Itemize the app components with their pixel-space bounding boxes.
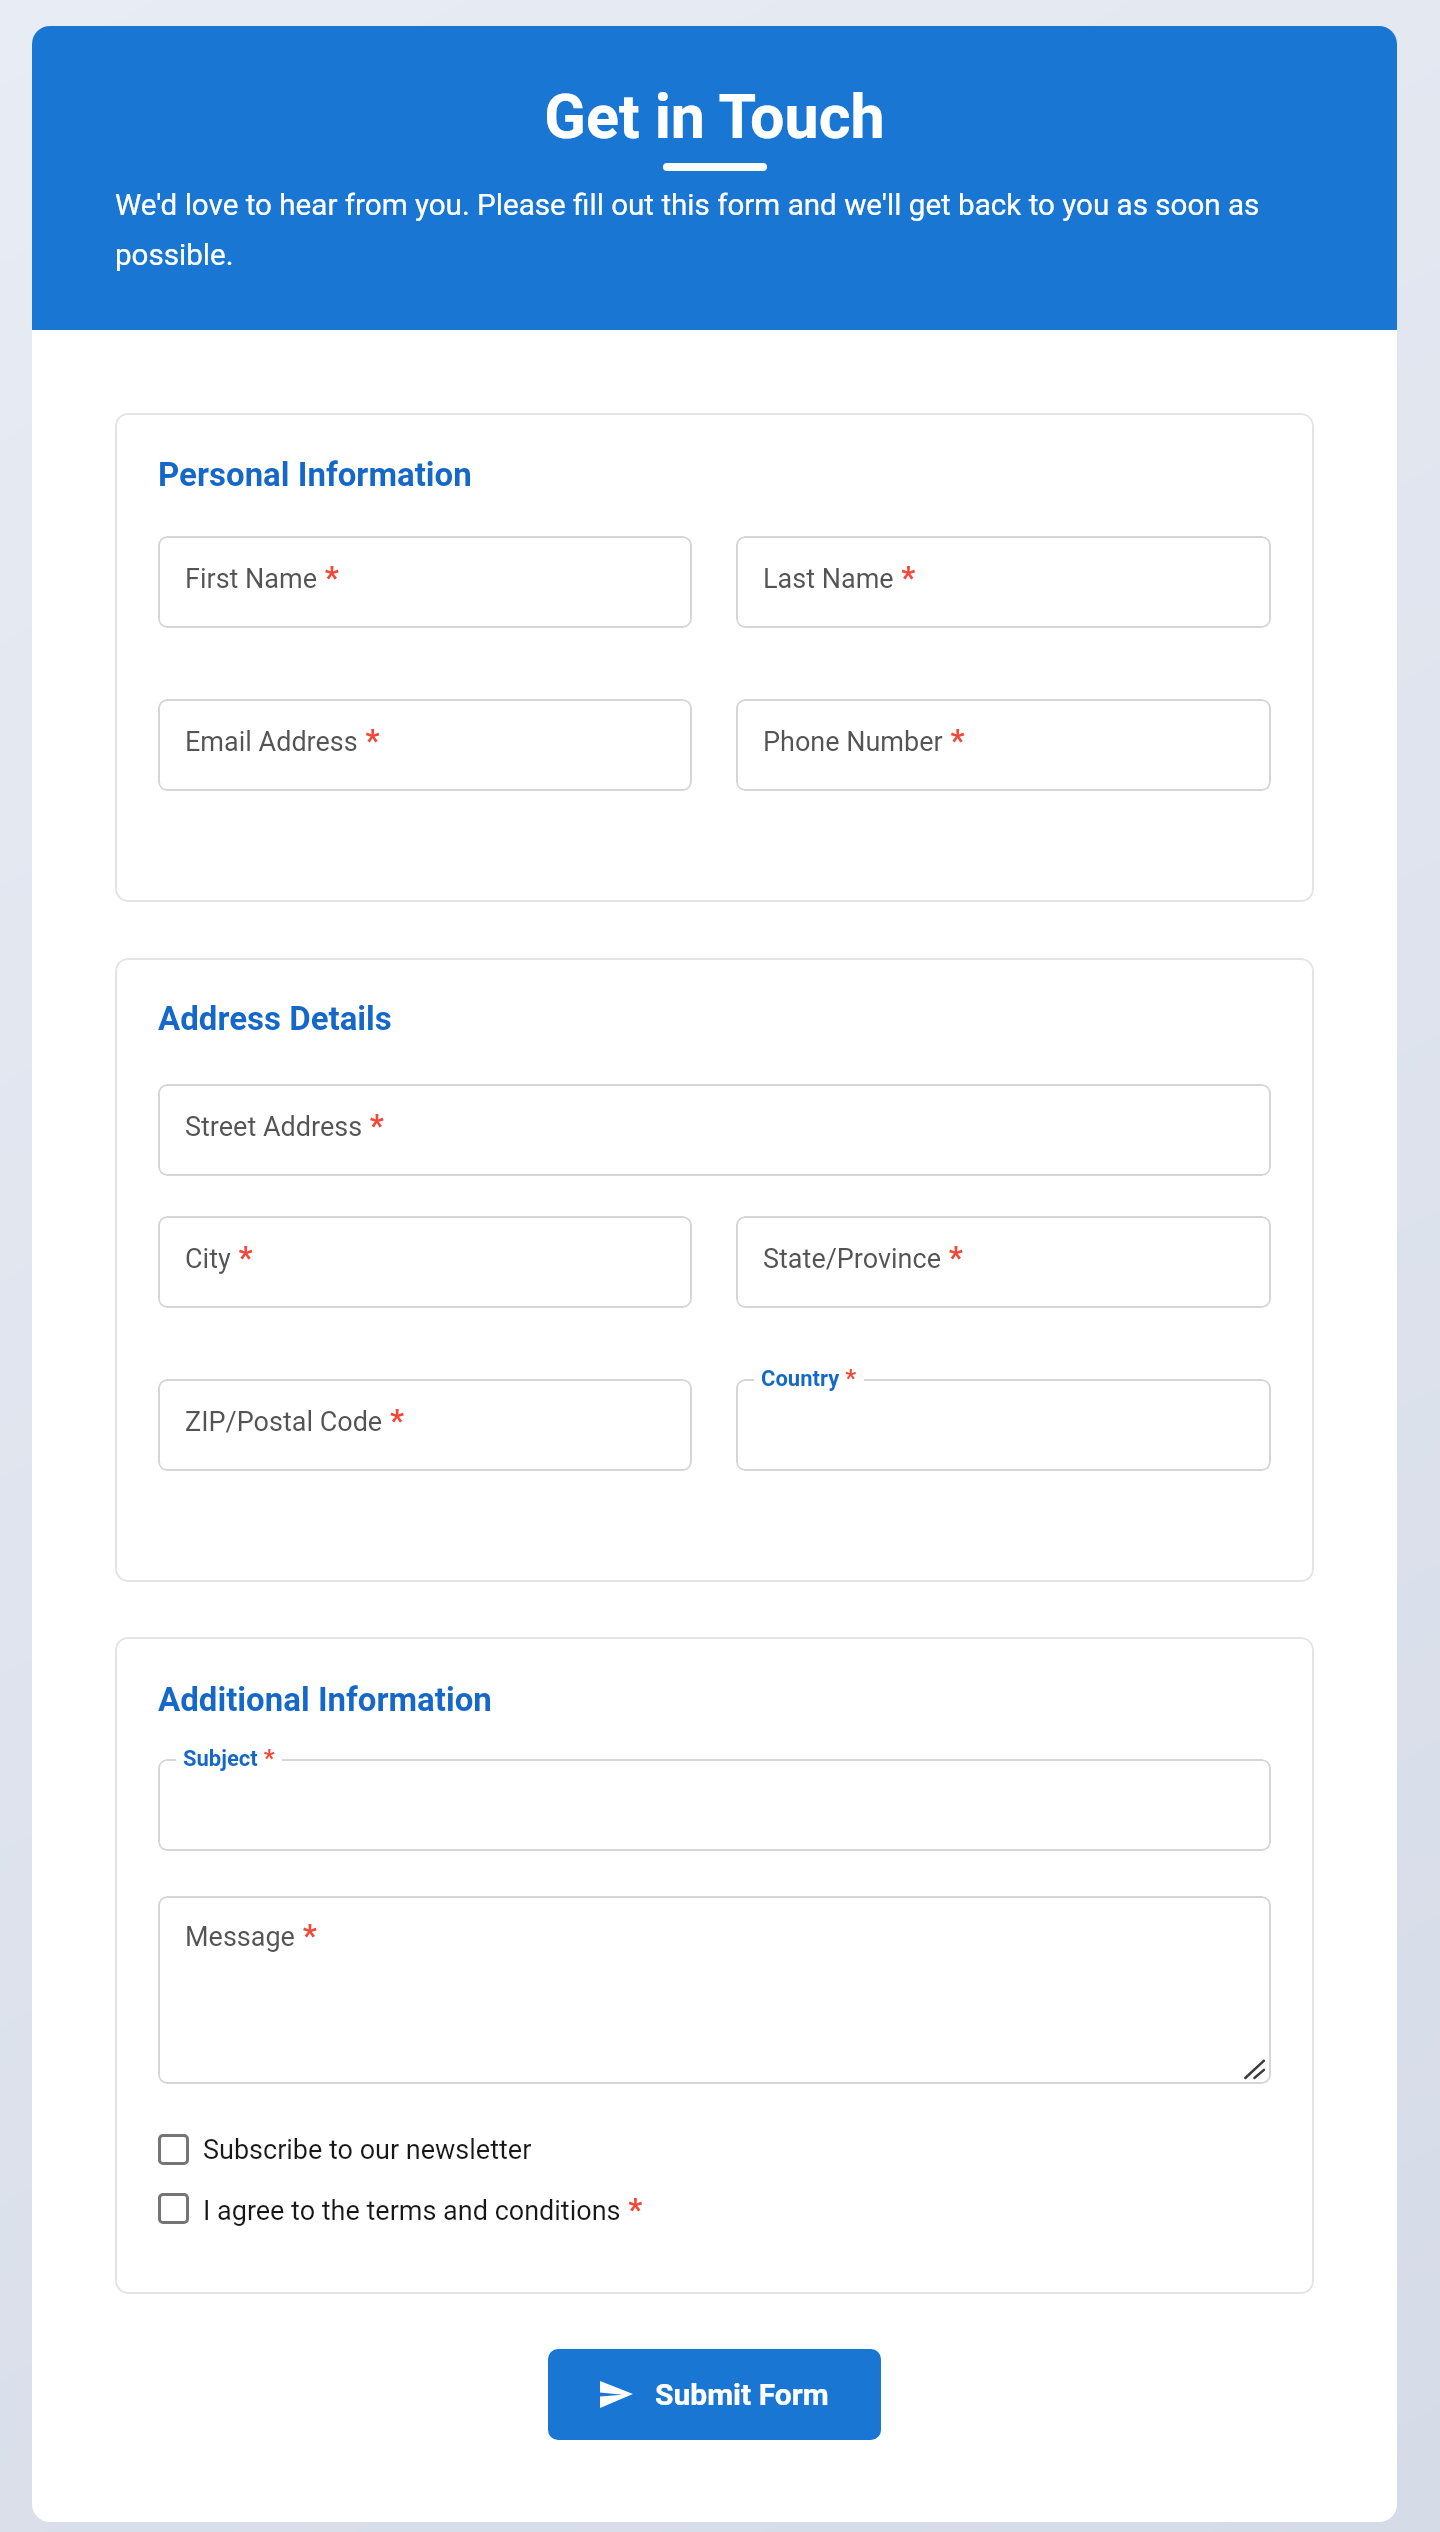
staticText: First Name * [185, 559, 339, 595]
staticText: State/Province * [763, 1239, 963, 1275]
button[interactable]: Message * [158, 1896, 1271, 2084]
button[interactable]: Subject * [158, 1759, 1271, 1851]
button[interactable]: State/Province * [736, 1216, 1271, 1308]
staticText: Message * [185, 1917, 317, 1953]
staticText: City * [185, 1239, 253, 1275]
staticText: Email Address * [185, 722, 380, 758]
button[interactable]: Phone Number * [736, 699, 1271, 791]
staticText: Submit Form [655, 2377, 829, 2412]
staticText: Address Details [158, 999, 392, 1038]
staticText: Subscribe to our newsletter [203, 2134, 532, 2166]
staticText: Phone Number * [763, 722, 965, 758]
staticText: Subject * [183, 1744, 275, 1772]
staticText: Personal Information [158, 455, 472, 494]
staticText: ZIP/Postal Code * [185, 1402, 404, 1438]
button[interactable]: ZIP/Postal Code * [158, 1379, 692, 1471]
staticText: Last Name * [763, 559, 916, 595]
button[interactable]: Send [548, 2349, 881, 2440]
button[interactable]: Subscribe to our newsletter [158, 2120, 1271, 2179]
staticText: Street Address * [185, 1107, 384, 1143]
button[interactable]: Email Address * [158, 699, 692, 791]
button[interactable]: City * [158, 1216, 692, 1308]
button[interactable]: Country * [736, 1379, 1271, 1471]
other: Send [600, 2381, 633, 2408]
staticText: Get in Touch [32, 81, 1397, 152]
staticText: Country * [761, 1364, 857, 1392]
button[interactable]: Last Name * [736, 536, 1271, 628]
button[interactable]: I agree to the terms and conditions * [158, 2179, 1271, 2238]
staticText: Additional Information [158, 1680, 492, 1719]
button[interactable]: Street Address * [158, 1084, 1271, 1176]
button[interactable]: First Name * [158, 536, 692, 628]
staticText: We'd love to hear from you. Please fill … [115, 188, 1314, 272]
staticText: I agree to the terms and conditions * [203, 2191, 643, 2227]
